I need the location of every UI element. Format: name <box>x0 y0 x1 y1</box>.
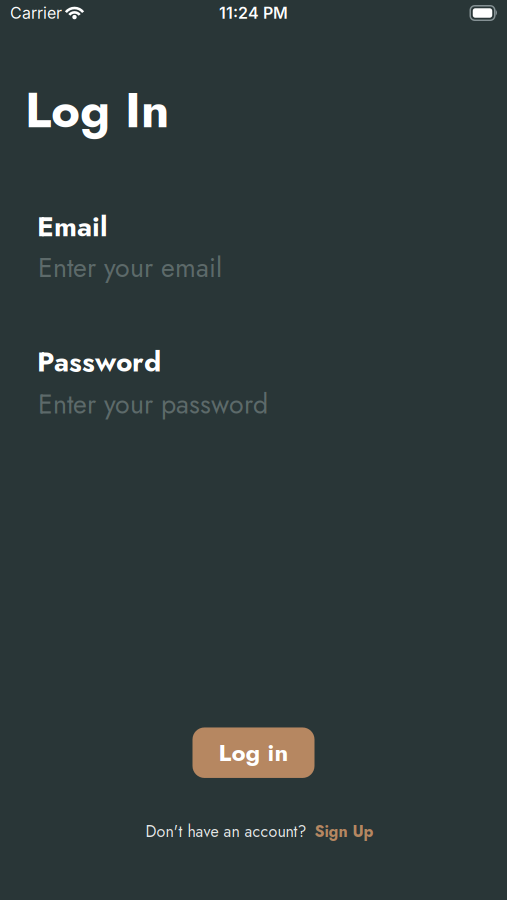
button[interactable]: Sign Up <box>314 820 373 843</box>
staticText: Log in <box>218 736 288 770</box>
staticText: 11:24 PM <box>219 3 288 23</box>
staticText: Log In <box>25 75 169 145</box>
staticText: Don't have an account? <box>145 820 306 843</box>
button[interactable]: Log in <box>192 727 314 778</box>
button[interactable]: Enter your email <box>0 249 507 287</box>
staticText: Password <box>37 342 161 381</box>
staticText: Email <box>37 207 108 246</box>
staticText: Carrier <box>10 3 62 23</box>
staticText: Enter your email <box>38 249 222 287</box>
staticText: Enter your password <box>38 385 268 423</box>
button[interactable]: Enter your password <box>0 385 507 423</box>
staticText: Sign Up <box>314 820 373 843</box>
